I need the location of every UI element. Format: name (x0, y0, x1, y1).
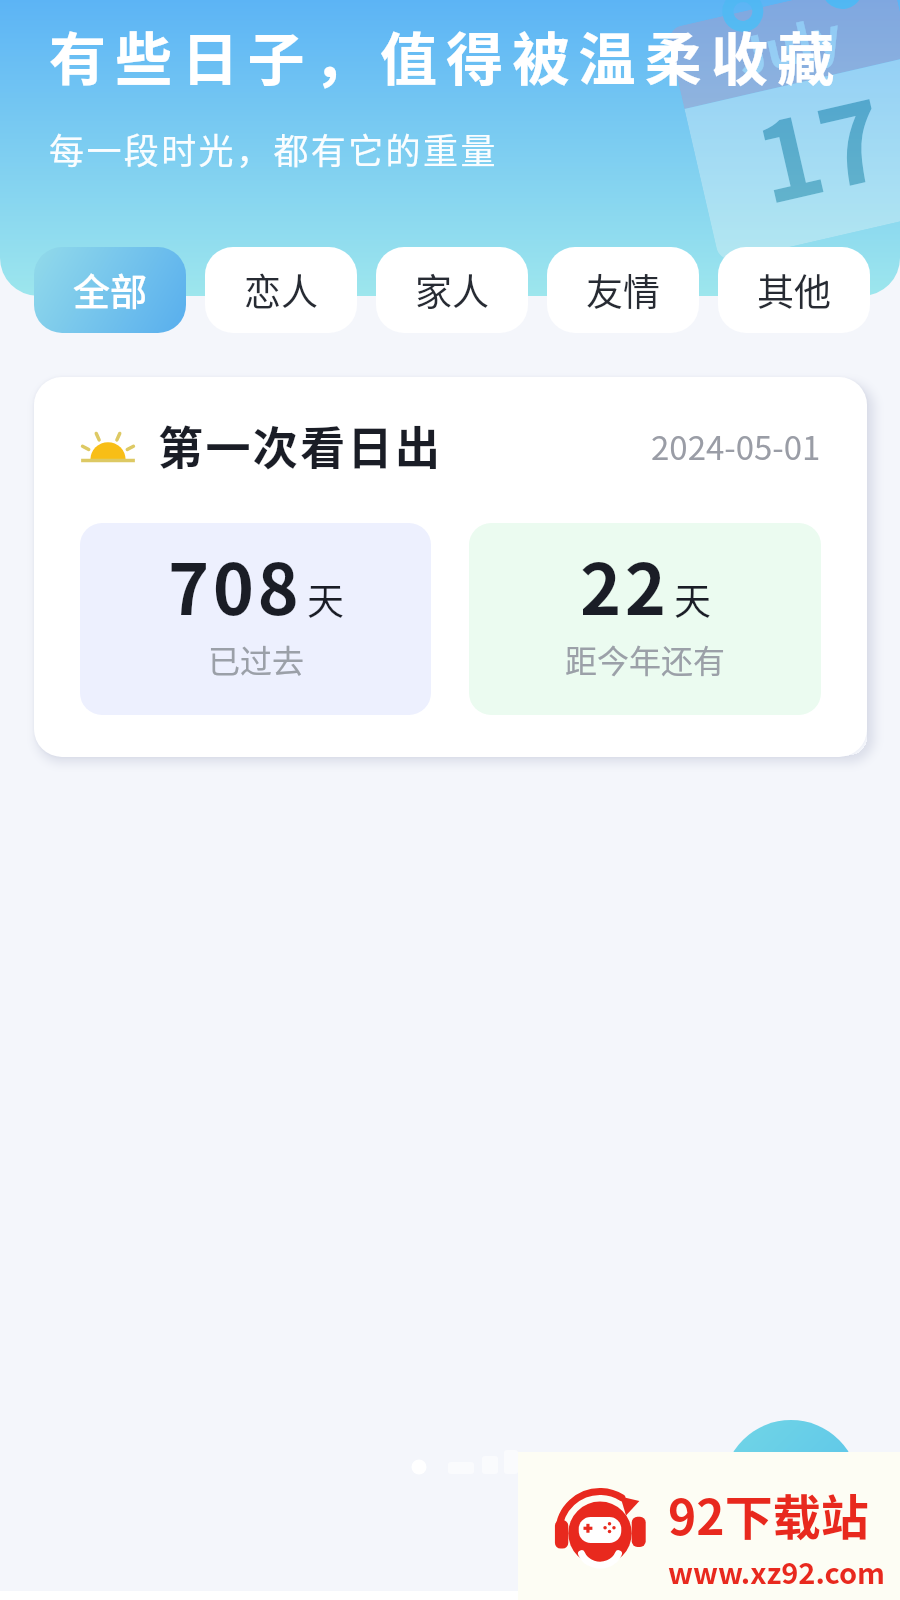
staticText: www.xz92.com (668, 1550, 886, 1592)
staticText: 恋人 (244, 263, 318, 317)
button[interactable]: Add new memorial day (723, 1420, 859, 1556)
staticText: 有些日子，值得被温柔收藏 (49, 14, 844, 97)
staticText: 2024-05-01 (651, 422, 821, 470)
staticText: 17 (740, 54, 900, 235)
staticText: 第一次看日出 (158, 413, 443, 478)
staticText: 已过去 (208, 636, 305, 682)
staticText: 全部 (73, 263, 147, 317)
staticText: 92下载站 (668, 1479, 869, 1549)
button[interactable]: 友情 (547, 247, 699, 333)
staticText: 22 (580, 534, 670, 635)
button[interactable]: 全部 (34, 247, 186, 333)
staticText: 距今年还有 (565, 636, 726, 682)
staticText: 其他 (757, 263, 831, 317)
staticText: 每一段时光，都有它的重量 (49, 123, 498, 174)
staticText: 家人 (415, 263, 489, 317)
staticText: July (729, 0, 848, 90)
button[interactable]: 第一次看日出 (34, 377, 867, 757)
staticText: 天 (307, 572, 344, 626)
staticText: 708 (168, 534, 303, 635)
button[interactable]: 家人 (376, 247, 528, 333)
staticText: 友情 (586, 263, 660, 317)
button[interactable]: 其他 (718, 247, 870, 333)
button[interactable]: 恋人 (205, 247, 357, 333)
staticText: 天 (674, 572, 711, 626)
